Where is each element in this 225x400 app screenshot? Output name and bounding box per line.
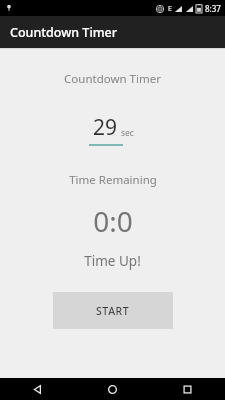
staticText: E [168, 4, 172, 14]
staticText: Time Up! [84, 252, 141, 270]
button[interactable]: Recent apps [150, 378, 225, 400]
staticText: Time Remaining [69, 172, 157, 188]
button[interactable]: Home [75, 378, 150, 400]
button[interactable]: 29 [89, 113, 137, 146]
staticText: 29 [93, 113, 118, 142]
button[interactable]: START [53, 292, 173, 329]
staticText: sec [121, 127, 134, 139]
staticText: 0:0 [93, 202, 133, 240]
staticText: Countdown Timer [64, 71, 161, 87]
staticText: START [96, 304, 130, 318]
staticText: 8:37 [205, 3, 221, 14]
button[interactable]: Back [0, 378, 75, 400]
staticText: Countdown Timer [10, 24, 118, 41]
